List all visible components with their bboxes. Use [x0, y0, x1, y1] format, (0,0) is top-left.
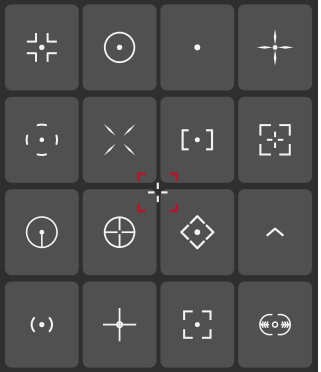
button[interactable]: Ranging reticle: [238, 282, 312, 368]
button[interactable]: Centre metering: [5, 4, 79, 90]
button[interactable]: Horizon dot: [5, 189, 79, 275]
button[interactable]: Arc dot: [5, 282, 79, 368]
button[interactable]: Corner frame dot: [160, 282, 234, 368]
button[interactable]: Ringed crosshair: [83, 282, 156, 368]
button[interactable]: Scope reticle: [83, 189, 156, 275]
button[interactable]: Segmented ring: [5, 97, 79, 183]
button[interactable]: Circle spot: [83, 4, 156, 90]
button[interactable]: Chevron up: [238, 189, 312, 275]
button[interactable]: Bracket spot: [160, 97, 234, 183]
button[interactable]: Viewfinder crosshair: [238, 97, 312, 183]
button[interactable]: Star burst: [83, 97, 156, 183]
button[interactable]: Diamond chevrons: [160, 189, 234, 275]
button[interactable]: Fine crosshair: [238, 4, 312, 90]
button[interactable]: Single point: [160, 4, 234, 90]
